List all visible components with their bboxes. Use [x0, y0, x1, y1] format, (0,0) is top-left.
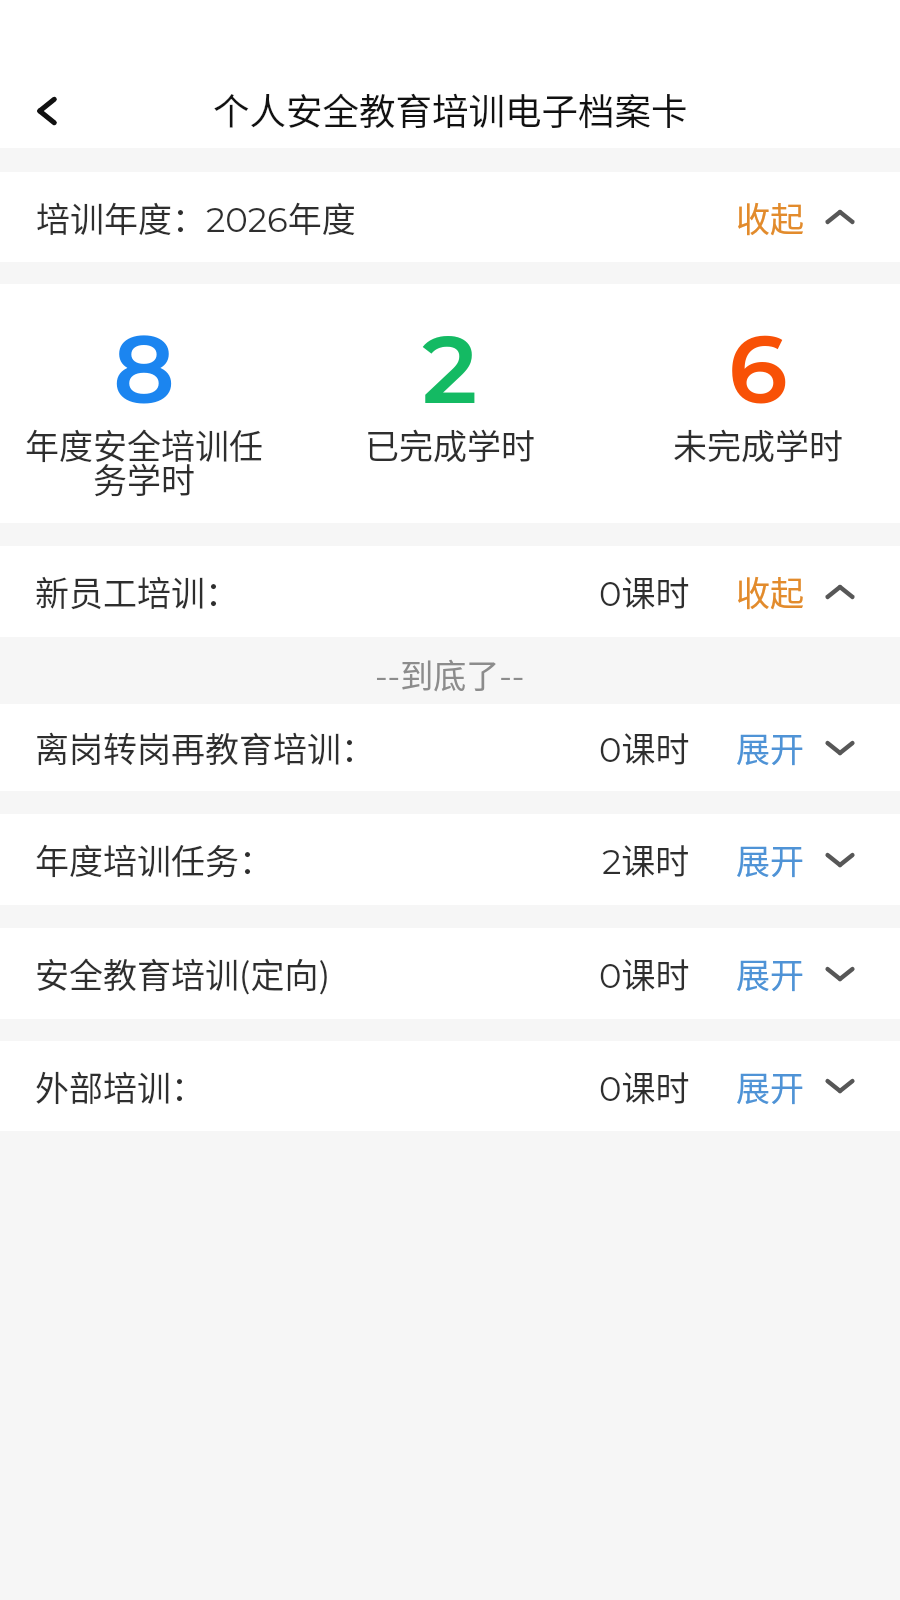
staticText: 收起: [736, 193, 804, 242]
staticText: 0课时: [599, 723, 690, 772]
staticText: 展开: [736, 723, 804, 772]
staticText: 0课时: [599, 567, 690, 616]
button[interactable]: 年度培训任务：: [0, 814, 900, 905]
staticText: 年度培训任务：: [35, 835, 273, 884]
staticText: 展开: [736, 1062, 804, 1111]
button[interactable]: 离岗转岗再教育培训：: [0, 704, 900, 791]
staticText: 0课时: [599, 949, 690, 998]
button[interactable]: 外部培训：: [0, 1041, 900, 1131]
button[interactable]: 培训年度：2026年度: [0, 172, 900, 262]
staticText: 个人安全教育培训电子档案卡: [213, 83, 688, 136]
staticText: 2: [422, 311, 478, 427]
staticText: 未完成学时: [673, 420, 843, 469]
staticText: --到底了--: [375, 650, 525, 698]
staticText: 收起: [736, 567, 804, 616]
staticText: 展开: [736, 949, 804, 998]
staticText: 0课时: [599, 1062, 690, 1111]
staticText: 已完成学时: [365, 420, 535, 469]
staticText: 8: [113, 311, 175, 427]
button[interactable]: 安全教育培训(定向): [0, 928, 900, 1019]
button[interactable]: Back: [11, 75, 83, 147]
staticText: 2课时: [602, 835, 690, 884]
staticText: 外部培训：: [35, 1062, 205, 1111]
staticText: 年度安全培训任务学时: [20, 420, 268, 503]
staticText: 6: [728, 311, 788, 427]
staticText: 离岗转岗再教育培训：: [35, 723, 375, 772]
staticText: 展开: [736, 835, 804, 884]
staticText: 培训年度：2026年度: [36, 193, 356, 242]
button[interactable]: 新员工培训：: [0, 546, 900, 637]
staticText: 安全教育培训(定向): [35, 949, 330, 998]
staticText: 新员工培训：: [35, 567, 239, 616]
